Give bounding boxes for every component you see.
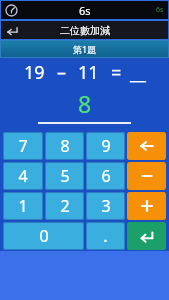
staticText: 8 [78, 88, 92, 119]
staticText: 7 [18, 135, 28, 157]
button[interactable]: 0 [3, 222, 84, 250]
staticText: 9 [101, 135, 111, 157]
staticText: 2 [60, 195, 70, 217]
button[interactable]: 3 [86, 192, 125, 220]
staticText: – [57, 60, 66, 85]
staticText: 4 [18, 165, 28, 187]
staticText: . [103, 225, 108, 247]
staticText: 6s [79, 3, 91, 18]
button[interactable]: 6 [86, 162, 125, 190]
staticText: = [111, 60, 122, 85]
button[interactable]: 2 [45, 192, 84, 220]
button[interactable]: Plus [127, 192, 166, 220]
button[interactable]: Enter [127, 222, 166, 250]
button[interactable]: 1 [3, 192, 43, 220]
button[interactable]: 5 [45, 162, 84, 190]
staticText: 11 [78, 60, 99, 85]
staticText: __ [130, 60, 146, 85]
button[interactable]: Back [6, 24, 19, 37]
staticText: 1 [18, 195, 28, 217]
staticText: 6 [101, 165, 111, 187]
staticText: 19 [24, 60, 45, 85]
button[interactable]: 8 [45, 132, 84, 160]
staticText: 0 [39, 225, 49, 247]
button[interactable]: Timer [4, 3, 19, 18]
button[interactable]: Backspace [127, 132, 166, 160]
button[interactable]: Minus [127, 162, 166, 190]
button[interactable]: 4 [3, 162, 43, 190]
staticText: 二位數加減 [60, 24, 110, 37]
button[interactable]: 9 [86, 132, 125, 160]
button[interactable]: 7 [3, 132, 43, 160]
button[interactable]: . [86, 222, 125, 250]
button[interactable]: Back [0, 20, 169, 40]
staticText: 3 [101, 195, 111, 217]
staticText: 6s [156, 5, 164, 15]
staticText: 8 [60, 135, 70, 157]
staticText: 第1題 [73, 43, 97, 55]
staticText: 5 [60, 165, 70, 187]
